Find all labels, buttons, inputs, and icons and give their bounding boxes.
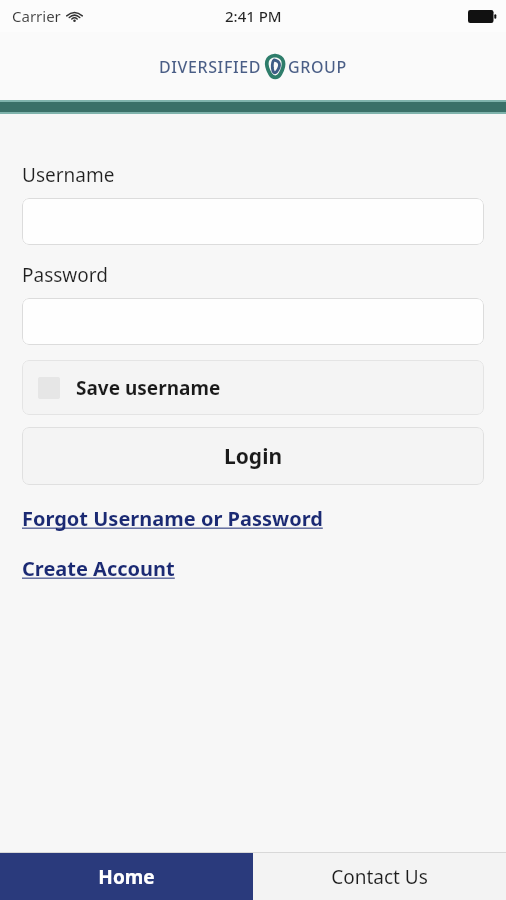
staticText: Carrier <box>12 6 61 26</box>
button[interactable]: Contact Us <box>253 853 506 900</box>
button[interactable]: Create Account <box>22 555 175 582</box>
button[interactable]: Home <box>0 853 253 900</box>
button[interactable]: Forgot Username or Password <box>22 505 323 532</box>
button[interactable] <box>22 298 484 345</box>
staticText: Password <box>22 262 108 288</box>
button[interactable]: Login <box>22 427 484 485</box>
staticText: Forgot Username or Password <box>22 505 323 532</box>
staticText: Login <box>224 442 283 471</box>
staticText: Save username <box>76 375 221 401</box>
staticText: 2:41 PM <box>225 6 282 26</box>
staticText: GROUP <box>288 56 347 78</box>
staticText: Username <box>22 162 115 188</box>
button[interactable] <box>22 198 484 245</box>
button[interactable]: Save username <box>22 360 484 415</box>
staticText: DIVERSIFIED <box>159 56 262 78</box>
staticText: Contact Us <box>331 864 428 890</box>
staticText: Home <box>98 864 155 890</box>
staticText: Create Account <box>22 555 175 582</box>
